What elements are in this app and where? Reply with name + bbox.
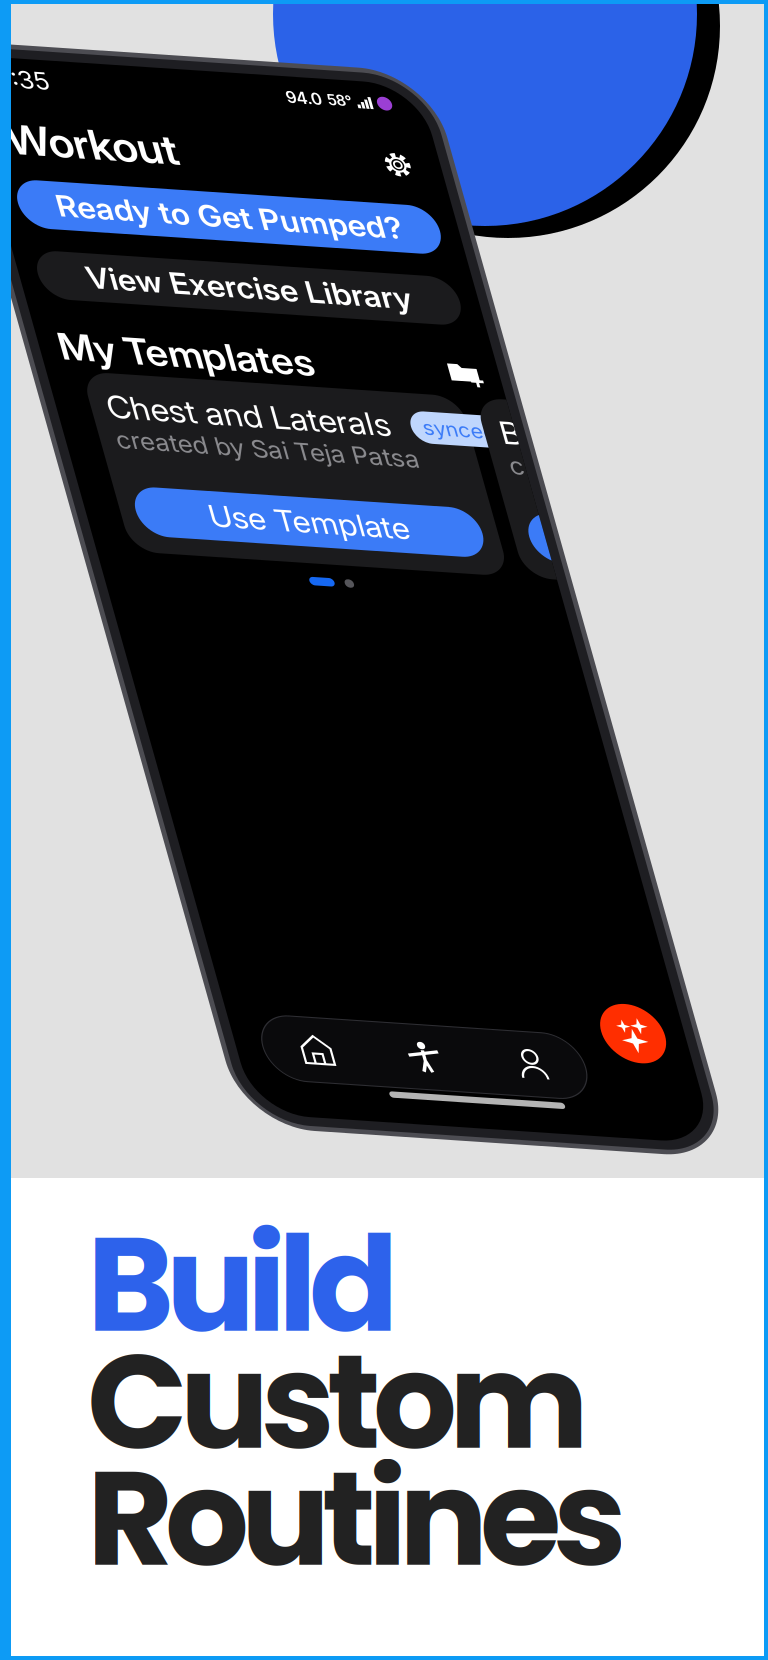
staticText: Back and Rear Delts <box>414 328 684 364</box>
staticText: View Exercise Library <box>83 206 368 240</box>
staticText: Custom <box>87 1309 589 1494</box>
button[interactable]: Ready to Get Pumped? <box>41 133 411 179</box>
button[interactable]: Workouts <box>142 921 237 983</box>
staticText: synced <box>712 335 768 357</box>
staticText: Use Template <box>478 428 654 461</box>
staticText: Chest and Laterals <box>69 328 318 364</box>
staticText: 8:35 <box>52 23 99 51</box>
button[interactable]: Use Template <box>69 421 373 468</box>
button[interactable]: Use Template <box>414 421 718 468</box>
staticText: created by Sai Teja Patsa <box>69 363 335 391</box>
staticText: Ready to Get Pumped? <box>74 139 377 173</box>
staticText: Build <box>87 1192 399 1377</box>
staticText: Use Template <box>133 428 309 461</box>
button[interactable]: New folder <box>383 279 411 303</box>
staticText: created by Sai Teja Patsa <box>414 363 680 391</box>
staticText: Workout <box>47 72 197 118</box>
staticText: Routines <box>87 1426 627 1611</box>
button[interactable]: View Exercise Library <box>41 200 411 246</box>
button[interactable]: Settings <box>375 80 405 110</box>
staticText: My Templates <box>41 270 265 312</box>
